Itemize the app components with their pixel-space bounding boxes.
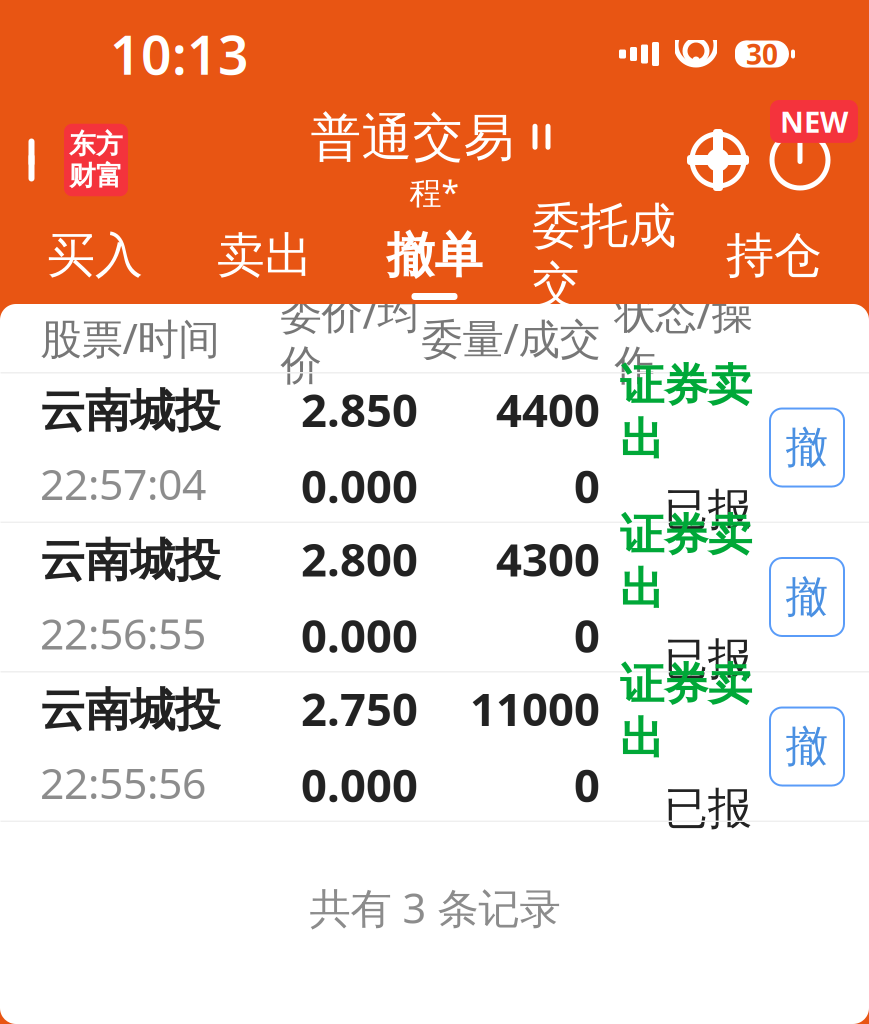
staticText: 已报	[664, 781, 752, 835]
staticText: 证券卖出	[620, 657, 752, 765]
button[interactable]: 撤单	[350, 212, 519, 304]
button[interactable]: 退出	[757, 117, 843, 203]
staticText: 0	[574, 455, 600, 516]
button[interactable]: 云南城投	[0, 672, 869, 820]
staticText: 状态/操作	[614, 285, 752, 391]
button[interactable]: 委托成交	[519, 212, 689, 304]
staticText: NEW	[780, 102, 848, 141]
staticText: 程*	[409, 171, 459, 213]
staticText: 委价/均价	[280, 285, 418, 391]
button[interactable]: 持仓	[689, 212, 859, 304]
staticText: 持仓	[726, 226, 822, 285]
staticText: 0	[574, 754, 600, 815]
button[interactable]: 卖出	[180, 212, 350, 304]
staticText: 已报	[664, 632, 752, 686]
staticText: 卖出	[217, 226, 313, 285]
staticText: 已报	[664, 482, 752, 536]
staticText: 撤	[785, 720, 828, 773]
staticText: 0	[574, 605, 600, 665]
staticText: 委托成交	[532, 196, 676, 314]
button[interactable]: 撤	[770, 558, 844, 636]
button[interactable]: 买入	[10, 212, 180, 304]
staticText: 10:13	[110, 19, 249, 89]
staticText: 30	[746, 35, 778, 73]
staticText: 股票/时间	[40, 311, 219, 365]
staticText: 撤单	[386, 226, 482, 285]
staticText: 撤	[785, 421, 828, 474]
staticText: 云南城投	[40, 383, 220, 439]
button[interactable]: 撤	[770, 408, 844, 486]
staticText: 财富	[69, 159, 123, 192]
staticText: 0.000	[301, 754, 418, 815]
staticText: 22:55:56	[40, 754, 206, 811]
button[interactable]: 撤	[770, 707, 844, 785]
staticText: 0.000	[301, 455, 418, 516]
staticText: 撤	[785, 571, 828, 623]
staticText: 2.850	[301, 379, 418, 439]
staticText: 2.750	[301, 678, 418, 738]
staticText: 证券卖出	[620, 358, 752, 466]
button[interactable]: 云南城投	[0, 373, 869, 521]
staticText: 22:57:04	[40, 455, 206, 512]
staticText: 东方	[69, 128, 123, 160]
staticText: 买入	[47, 226, 143, 285]
staticText: 2.800	[301, 529, 418, 589]
staticText: 11000	[470, 678, 600, 738]
staticText: 证券卖出	[620, 508, 752, 616]
staticText: 22:56:55	[40, 604, 206, 661]
staticText: 4400	[496, 379, 600, 439]
button[interactable]: 返回	[0, 114, 128, 206]
staticText: 4300	[496, 529, 600, 589]
button[interactable]: 云南城投	[0, 523, 869, 671]
staticText: 共有 3 条记录	[309, 880, 560, 935]
staticText: 普通交易	[310, 107, 514, 169]
staticText: 云南城投	[40, 682, 220, 738]
staticText: 委量/成交	[421, 311, 600, 365]
staticText: 0.000	[301, 605, 418, 665]
staticText: 云南城投	[40, 533, 220, 588]
button[interactable]: 设置	[679, 121, 757, 199]
